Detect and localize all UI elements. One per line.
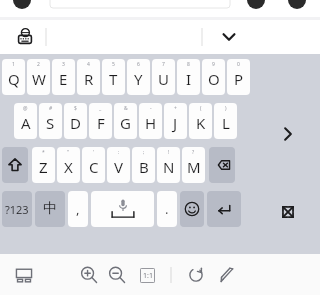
staticText: F: [97, 113, 105, 133]
button[interactable]: &: [114, 103, 137, 139]
button[interactable]: Expand candidates: [215, 23, 243, 51]
button[interactable]: 1: [2, 59, 25, 95]
staticText: H: [145, 113, 157, 133]
staticText: ?: [192, 149, 195, 156]
staticText: 6: [137, 61, 140, 68]
staticText: O: [208, 69, 220, 89]
button[interactable]: Zoom in: [75, 261, 103, 289]
button[interactable]: Edit: [214, 261, 242, 289]
staticText: :: [118, 149, 120, 156]
staticText: ;: [143, 149, 145, 156]
button[interactable]: ?: [182, 147, 205, 183]
staticText: !: [168, 149, 170, 156]
staticText: 3: [62, 61, 65, 68]
staticText: I: [186, 69, 192, 89]
staticText: G: [120, 113, 131, 133]
button[interactable]: ?123: [2, 191, 32, 227]
staticText: Q: [8, 69, 20, 89]
button[interactable]: -: [139, 103, 162, 139]
staticText: V: [114, 157, 124, 177]
staticText: (: [200, 105, 202, 112]
button[interactable]: Resize keyboard: [274, 198, 302, 226]
staticText: 7: [162, 61, 165, 68]
staticText: M: [187, 157, 201, 177]
staticText: K: [196, 113, 206, 133]
button[interactable]: +: [164, 103, 187, 139]
button[interactable]: .: [157, 191, 177, 227]
button[interactable]: @: [14, 103, 37, 139]
button[interactable]: 8: [177, 59, 200, 95]
button[interactable]: Layout: [10, 261, 38, 289]
staticText: B: [139, 157, 149, 177]
staticText: _: [99, 105, 102, 112]
staticText: 1:1: [143, 271, 153, 281]
button[interactable]: ,: [68, 191, 88, 227]
button[interactable]: 6: [127, 59, 150, 95]
button[interactable]: ': [82, 147, 105, 183]
button[interactable]: 9: [202, 59, 225, 95]
staticText: 8: [187, 61, 190, 68]
button[interactable]: ": [57, 147, 80, 183]
staticText: ,: [76, 200, 80, 218]
staticText: Z: [39, 157, 48, 177]
button[interactable]: Next: [274, 120, 302, 148]
staticText: #: [49, 105, 53, 112]
button[interactable]: $: [64, 103, 87, 139]
staticText: 5: [112, 61, 115, 68]
staticText: Y: [134, 69, 143, 89]
button[interactable]: ): [214, 103, 237, 139]
button[interactable]: Emoji: [180, 191, 204, 227]
button[interactable]: :: [107, 147, 130, 183]
staticText: .: [165, 200, 169, 218]
staticText: &: [124, 105, 128, 112]
staticText: ?123: [5, 202, 29, 217]
staticText: C: [89, 157, 99, 177]
button[interactable]: Backspace: [209, 147, 235, 183]
button[interactable]: 中: [35, 191, 65, 227]
button[interactable]: *: [32, 147, 55, 183]
button[interactable]: Space: [91, 191, 154, 227]
button[interactable]: 2: [27, 59, 50, 95]
staticText: U: [158, 69, 169, 89]
button[interactable]: Zoom out: [103, 261, 131, 289]
staticText: 4: [87, 61, 90, 68]
staticText: 2: [37, 61, 40, 68]
button[interactable]: 7: [152, 59, 175, 95]
staticText: W: [32, 69, 46, 89]
button[interactable]: _: [89, 103, 112, 139]
staticText: X: [64, 157, 73, 177]
staticText: *: [42, 149, 45, 156]
staticText: @: [23, 105, 28, 112]
button[interactable]: Redo: [182, 261, 210, 289]
staticText: N: [163, 157, 175, 177]
button[interactable]: !: [157, 147, 180, 183]
button[interactable]: #: [39, 103, 62, 139]
staticText: 中: [43, 200, 57, 218]
staticText: $: [74, 105, 77, 112]
staticText: D: [70, 113, 81, 133]
button[interactable]: Actual size: [133, 261, 161, 289]
staticText: J: [173, 113, 178, 133]
staticText: P: [234, 69, 244, 89]
button[interactable]: 0: [227, 59, 250, 95]
button[interactable]: Shift: [2, 147, 28, 183]
staticText: E: [59, 69, 68, 89]
staticText: ): [225, 105, 227, 112]
button[interactable]: Switch input language: [12, 24, 38, 50]
button[interactable]: Enter: [207, 191, 241, 227]
staticText: 1: [12, 61, 15, 68]
staticText: R: [84, 69, 94, 89]
staticText: S: [46, 113, 55, 133]
button[interactable]: 4: [77, 59, 100, 95]
staticText: A: [21, 113, 31, 133]
staticText: -: [150, 105, 152, 112]
button[interactable]: 5: [102, 59, 125, 95]
button[interactable]: 3: [52, 59, 75, 95]
button[interactable]: (: [189, 103, 212, 139]
staticText: ": [67, 149, 70, 156]
staticText: +: [174, 105, 177, 112]
staticText: 9: [212, 61, 215, 68]
button[interactable]: ;: [132, 147, 155, 183]
staticText: ': [93, 149, 95, 156]
staticText: T: [109, 69, 118, 89]
